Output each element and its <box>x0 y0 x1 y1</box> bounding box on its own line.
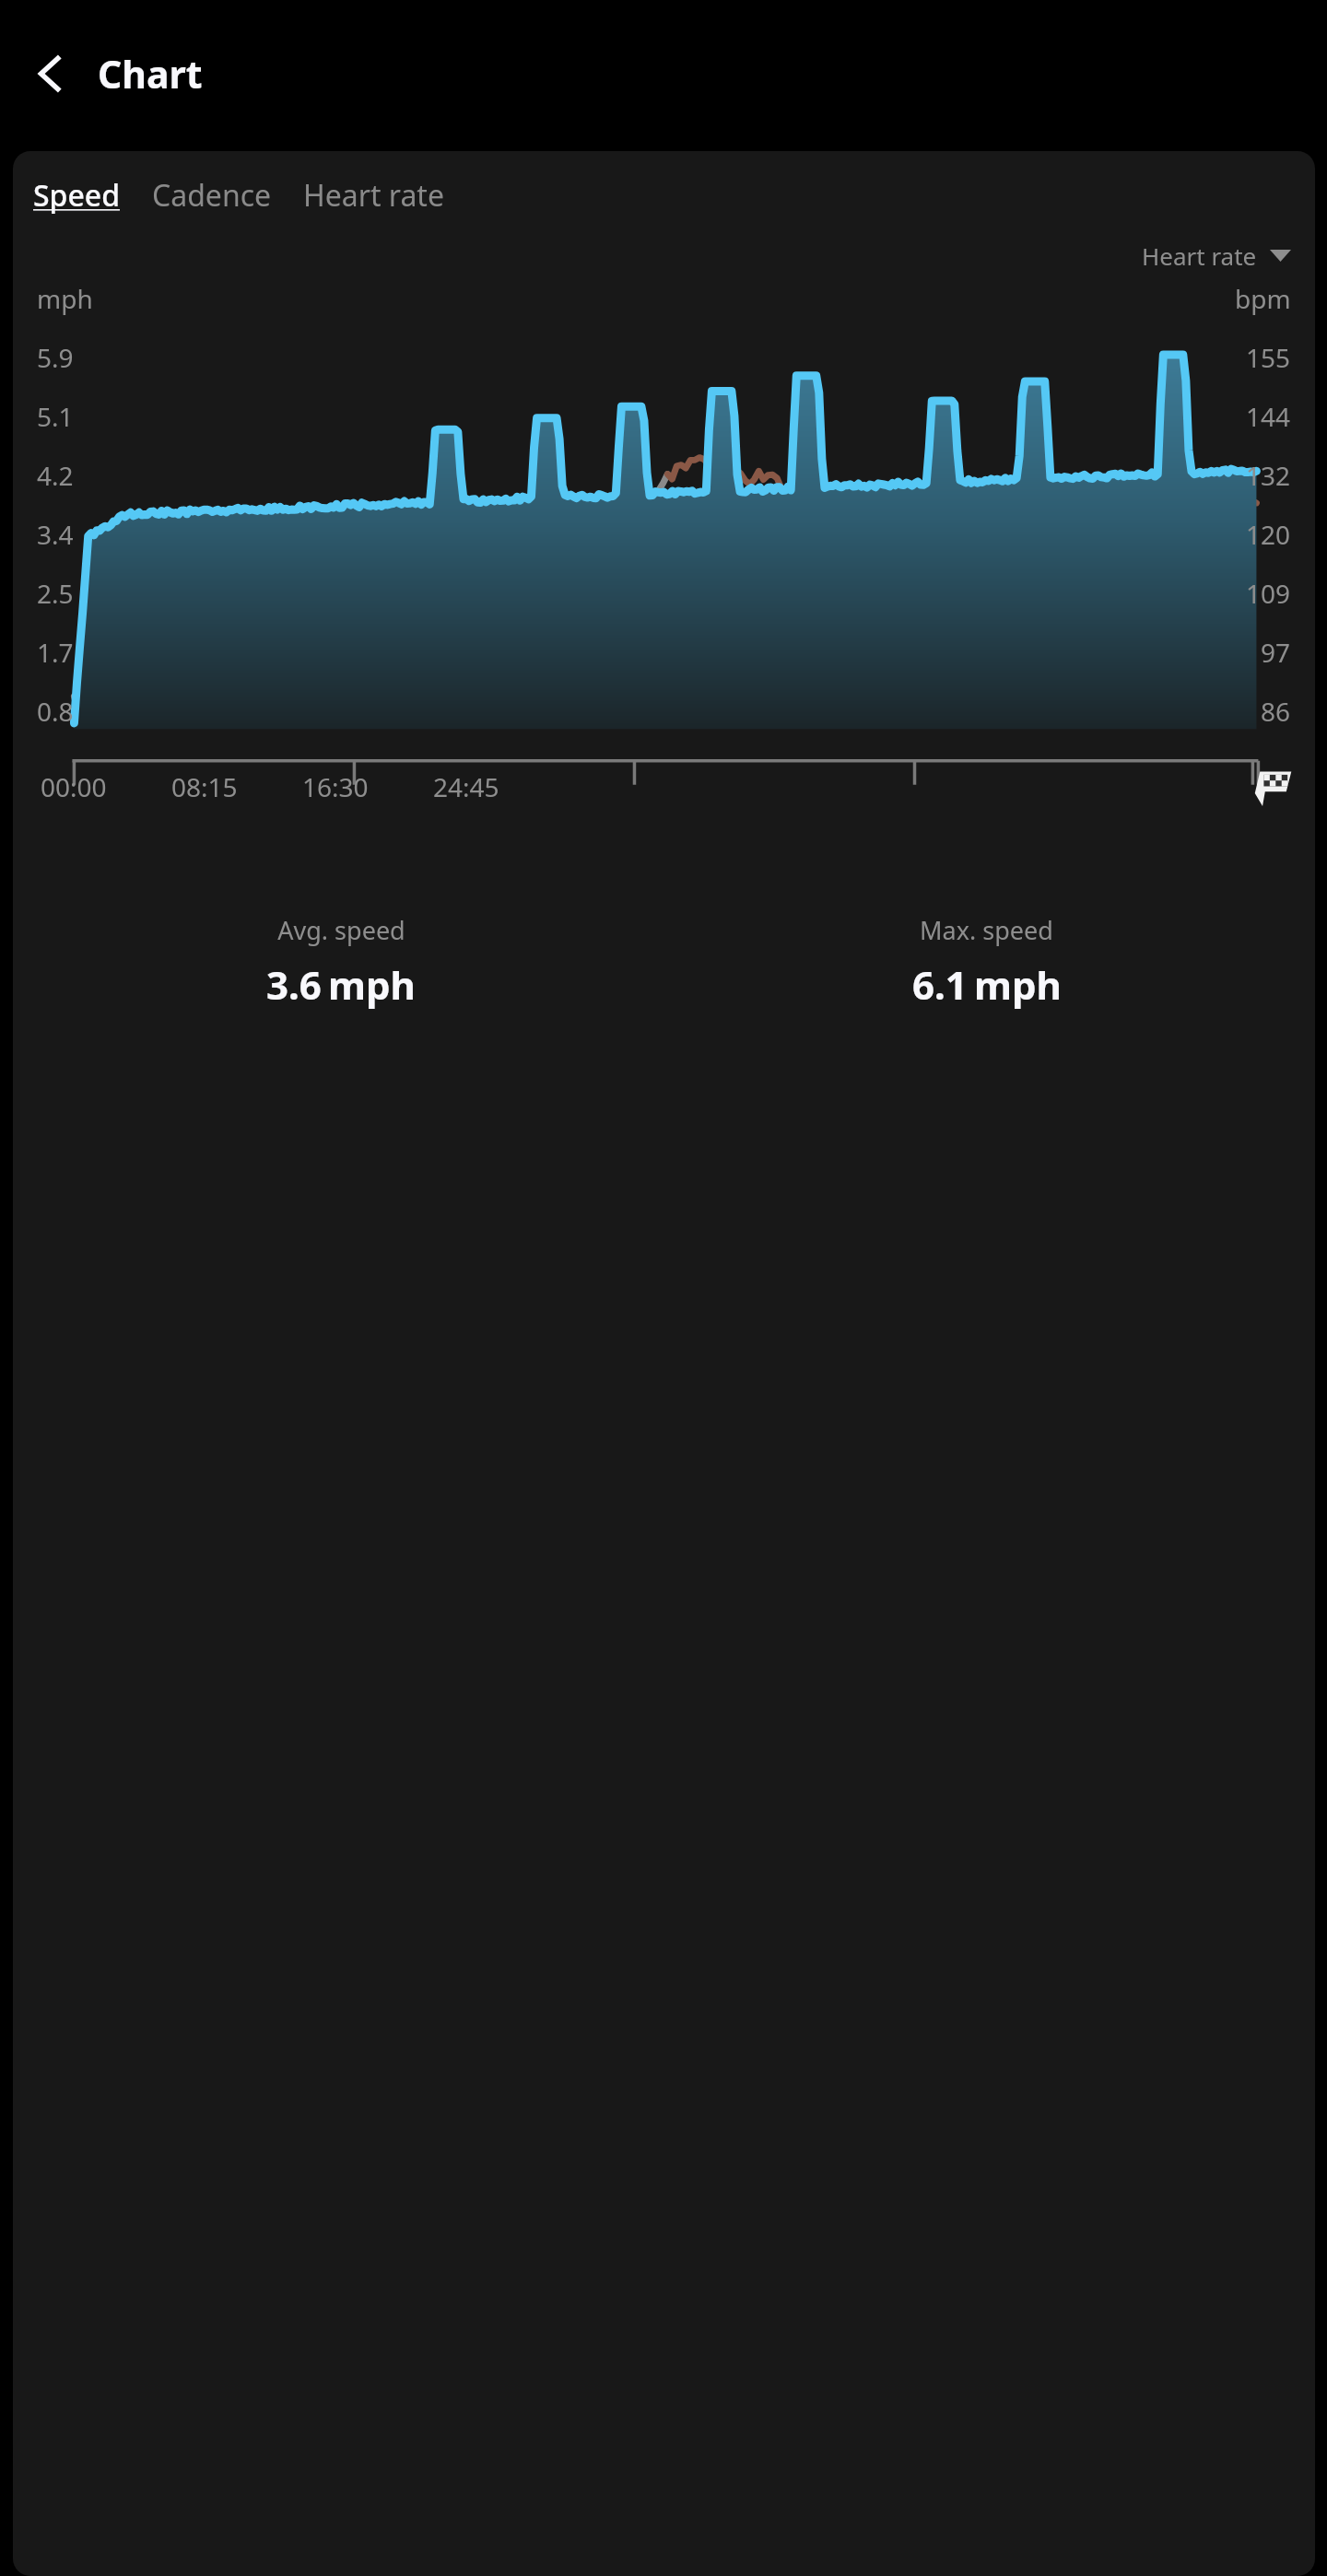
button[interactable]: Heart rate <box>1136 234 1297 277</box>
staticText: 109 <box>1246 576 1291 611</box>
staticText: 00:00 <box>41 769 107 804</box>
staticText: Cadence <box>152 175 272 216</box>
button[interactable]: Speed <box>22 170 132 221</box>
staticText: 1.7 <box>37 635 74 670</box>
staticText: 3.6 <box>266 958 322 1011</box>
staticText: 08:15 <box>171 769 238 804</box>
staticText: mph <box>974 958 1062 1011</box>
button[interactable]: Back <box>17 39 87 109</box>
staticText: 2.5 <box>37 576 74 611</box>
staticText: Chart <box>98 48 203 100</box>
staticText: 6.1 <box>912 958 968 1011</box>
staticText: 86 <box>1261 694 1291 729</box>
staticText: Heart rate <box>1142 240 1257 272</box>
staticText: 24:45 <box>433 769 499 804</box>
staticText: 120 <box>1246 517 1291 552</box>
staticText: bpm <box>1235 281 1291 316</box>
staticText: 5.1 <box>37 399 74 434</box>
staticText: 3.4 <box>37 517 74 552</box>
staticText: Speed <box>33 175 121 216</box>
button[interactable]: Heart rate <box>292 170 455 221</box>
staticText: 16:30 <box>302 769 369 804</box>
staticText: mph <box>328 958 416 1011</box>
staticText: 5.9 <box>37 340 74 375</box>
staticText: 4.2 <box>37 458 74 493</box>
staticText: 155 <box>1246 340 1291 375</box>
staticText: 97 <box>1261 635 1291 670</box>
staticText: 0.8 <box>37 694 74 729</box>
button[interactable]: Cadence <box>141 170 283 221</box>
staticText: Heart rate <box>303 175 444 216</box>
staticText: mph <box>37 281 93 316</box>
staticText: 132 <box>1246 458 1291 493</box>
staticText: 144 <box>1246 399 1291 434</box>
staticText: Max. speed <box>920 913 1053 947</box>
staticText: Avg. speed <box>277 913 405 947</box>
